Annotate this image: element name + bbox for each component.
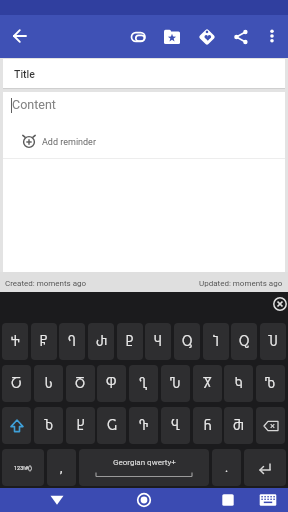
button[interactable] bbox=[254, 488, 282, 512]
staticText: Ⴄ bbox=[68, 335, 76, 349]
button[interactable]: 123!#() bbox=[2, 449, 44, 486]
button[interactable] bbox=[214, 488, 242, 512]
button[interactable]: Ⴆ bbox=[34, 407, 63, 444]
button[interactable]: Ⴉ bbox=[224, 365, 253, 402]
staticText: Ⴌ bbox=[204, 419, 212, 433]
button[interactable]: Ⴊ bbox=[256, 365, 285, 402]
button[interactable] bbox=[260, 23, 286, 49]
staticText: 123!#() bbox=[14, 465, 32, 471]
button[interactable] bbox=[158, 23, 186, 51]
button[interactable] bbox=[266, 290, 288, 318]
staticText: Ⴁ bbox=[171, 419, 180, 433]
staticText: Ⴂ bbox=[139, 377, 148, 391]
button[interactable]: Ⴀ bbox=[2, 365, 31, 402]
staticText: Content bbox=[12, 97, 56, 112]
staticText: Ⴊ bbox=[265, 377, 276, 391]
staticText: Ⴚ bbox=[107, 419, 117, 433]
button[interactable]: Ⴗ bbox=[145, 323, 171, 360]
staticText: Created: moments ago bbox=[5, 279, 87, 288]
staticText: Ⴍ bbox=[239, 335, 250, 349]
button[interactable]: Georgian qwerty+ bbox=[79, 449, 209, 486]
staticText: Ⴒ bbox=[126, 335, 134, 349]
button[interactable] bbox=[193, 23, 221, 51]
button[interactable] bbox=[124, 23, 152, 51]
button[interactable]: Ⴕ bbox=[2, 323, 28, 360]
staticText: Ⴃ bbox=[75, 377, 86, 391]
staticText: Ⴋ bbox=[233, 419, 244, 433]
button[interactable] bbox=[256, 407, 285, 444]
staticText: Ⴀ bbox=[11, 377, 22, 391]
staticText: Ⴉ bbox=[235, 377, 243, 391]
staticText: Ⴓ bbox=[182, 335, 193, 349]
button[interactable]: Ⴂ bbox=[129, 365, 158, 402]
staticText: , bbox=[60, 461, 63, 475]
button[interactable]: Ⴚ bbox=[97, 407, 126, 444]
button[interactable] bbox=[227, 23, 255, 51]
staticText: Ⴅ bbox=[139, 419, 149, 433]
staticText: Ⴜ bbox=[40, 335, 48, 349]
button[interactable] bbox=[130, 488, 158, 512]
staticText: Title bbox=[14, 68, 35, 80]
button[interactable]: Title bbox=[3, 59, 285, 88]
button[interactable] bbox=[43, 488, 71, 512]
staticText: Add reminder bbox=[42, 137, 96, 148]
button[interactable]: Ⴒ bbox=[117, 323, 143, 360]
staticText: Ⴔ bbox=[106, 377, 117, 391]
staticText: Georgian qwerty+ bbox=[113, 458, 176, 467]
button[interactable]: Ⴄ bbox=[59, 323, 85, 360]
button[interactable]: Ⴔ bbox=[97, 365, 126, 402]
button[interactable]: Ⴋ bbox=[224, 407, 253, 444]
button[interactable]: Ⴐ bbox=[88, 323, 114, 360]
button[interactable]: Ⴎ bbox=[260, 323, 286, 360]
staticText: . bbox=[225, 461, 229, 475]
button[interactable] bbox=[244, 449, 286, 486]
button[interactable]: Ⴍ bbox=[231, 323, 257, 360]
staticText: Ⴗ bbox=[154, 335, 162, 349]
button[interactable]: Content bbox=[3, 92, 285, 272]
button[interactable]: Ⴓ bbox=[174, 323, 200, 360]
button[interactable]: Ⴟ bbox=[193, 365, 222, 402]
button[interactable]: Ⴃ bbox=[66, 365, 95, 402]
staticText: Ⴆ bbox=[44, 419, 54, 433]
staticText: Ⴞ bbox=[77, 419, 85, 433]
staticText: Ⴎ bbox=[268, 335, 278, 349]
staticText: Ⴠ bbox=[170, 377, 181, 391]
button[interactable]: Ⴁ bbox=[161, 407, 190, 444]
button[interactable]: Ⴌ bbox=[193, 407, 222, 444]
button[interactable]: , bbox=[47, 449, 76, 486]
staticText: Ⴈ bbox=[213, 335, 219, 349]
button[interactable]: Ⴑ bbox=[34, 365, 63, 402]
button[interactable]: Ⴅ bbox=[129, 407, 158, 444]
button[interactable] bbox=[6, 22, 34, 50]
button[interactable]: . bbox=[212, 449, 241, 486]
staticText: Ⴐ bbox=[96, 335, 107, 349]
staticText: Updated: moments ago bbox=[199, 279, 283, 288]
staticText: Ⴟ bbox=[203, 377, 212, 391]
button[interactable]: Ⴠ bbox=[161, 365, 190, 402]
button[interactable]: Ⴈ bbox=[203, 323, 229, 360]
button[interactable]: Ⴞ bbox=[66, 407, 95, 444]
staticText: Ⴑ bbox=[45, 377, 53, 391]
button[interactable]: Add reminder bbox=[3, 128, 285, 156]
button[interactable]: Ⴜ bbox=[31, 323, 57, 360]
button[interactable] bbox=[2, 407, 31, 444]
staticText: Ⴕ bbox=[11, 335, 20, 349]
